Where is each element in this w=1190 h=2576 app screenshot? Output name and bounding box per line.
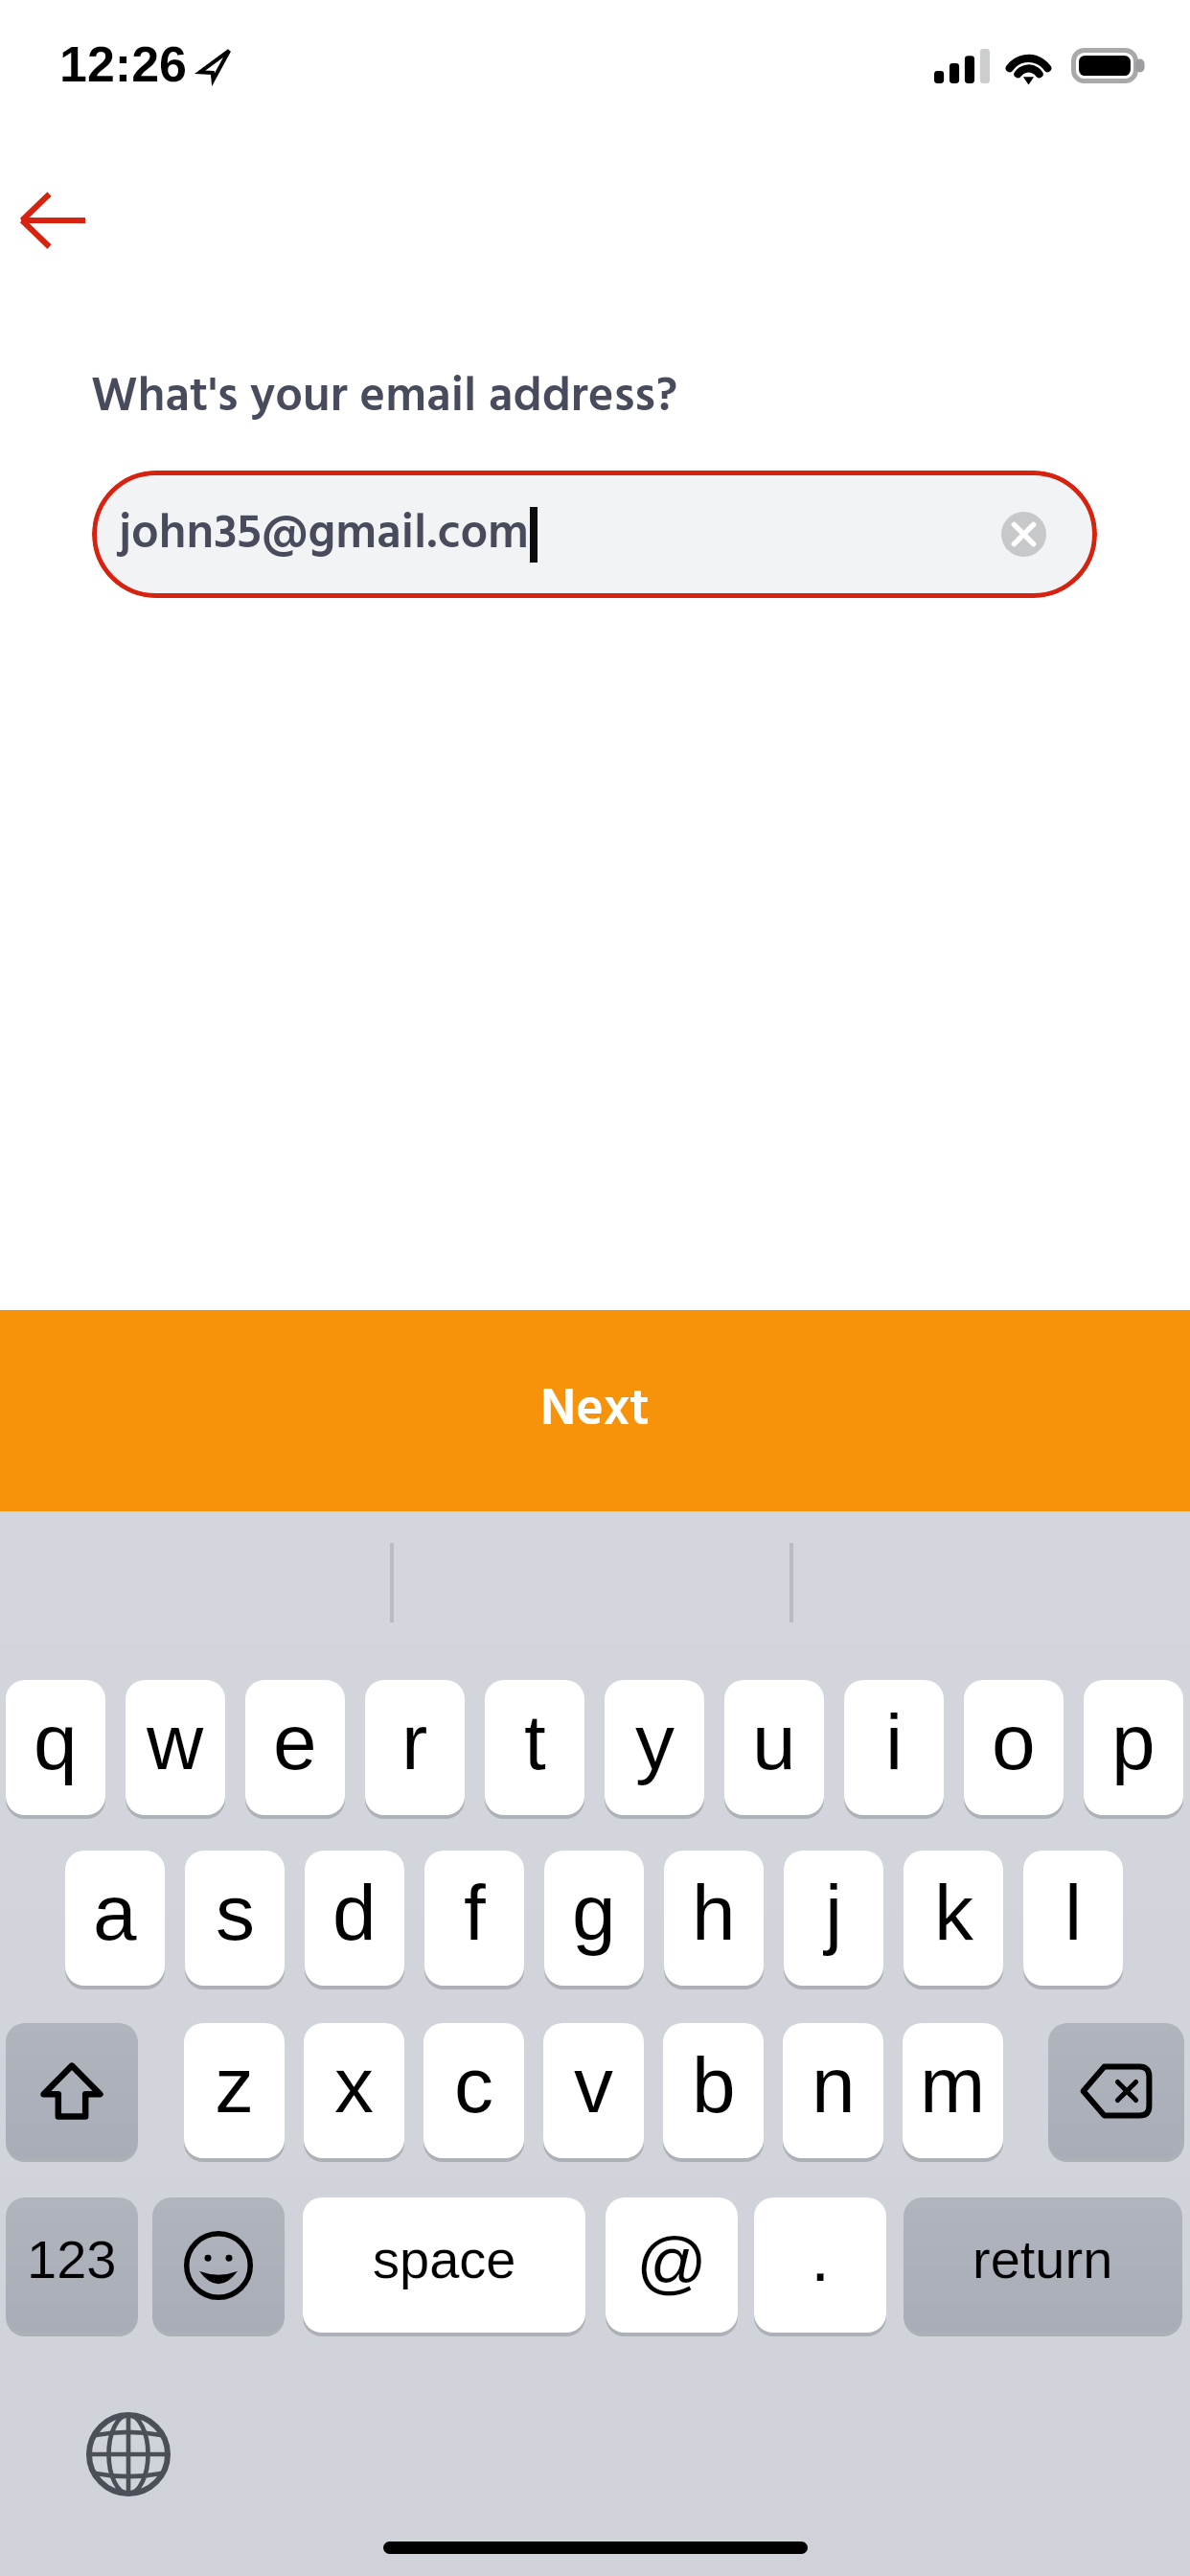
button[interactable]: p — [1084, 1680, 1183, 1815]
staticText: k — [934, 1869, 973, 1957]
button[interactable]: g — [544, 1851, 644, 1986]
button[interactable]: Shift — [6, 2023, 138, 2158]
staticText: space — [373, 2229, 516, 2289]
staticText: y — [635, 1698, 675, 1786]
button[interactable]: 123 — [6, 2197, 138, 2333]
staticText: 123 — [27, 2229, 117, 2289]
button[interactable]: e — [245, 1680, 345, 1815]
staticText: b — [692, 2041, 736, 2129]
button[interactable]: @ — [606, 2197, 738, 2333]
staticText: v — [574, 2041, 613, 2129]
staticText: john35@gmail.com — [119, 495, 529, 573]
button[interactable]: y — [605, 1680, 704, 1815]
staticText: Next — [540, 1369, 650, 1452]
staticText: t — [524, 1698, 546, 1786]
staticText: m — [920, 2041, 986, 2129]
button[interactable]: h — [664, 1851, 764, 1986]
staticText: j — [825, 1869, 843, 1957]
button[interactable]: Switch keyboard — [86, 2412, 171, 2496]
button[interactable]: n — [783, 2023, 883, 2158]
staticText: z — [215, 2041, 254, 2129]
button[interactable]: d — [305, 1851, 404, 1986]
staticText: a — [93, 1869, 137, 1957]
button[interactable]: v — [543, 2023, 644, 2158]
button[interactable]: q — [6, 1680, 105, 1815]
staticText: l — [1064, 1869, 1083, 1957]
button[interactable]: c — [423, 2023, 524, 2158]
other: Shift — [40, 2062, 103, 2120]
button[interactable]: r — [365, 1680, 465, 1815]
button[interactable]: f — [424, 1851, 524, 1986]
staticText: x — [334, 2041, 374, 2129]
staticText: u — [752, 1698, 796, 1786]
button[interactable]: Next — [0, 1310, 1190, 1511]
button[interactable]: Clear text — [1001, 512, 1046, 557]
button[interactable]: j — [784, 1851, 883, 1986]
other: Emoji — [184, 2231, 253, 2300]
staticText: . — [811, 2218, 831, 2296]
staticText: n — [812, 2041, 856, 2129]
staticText: c — [454, 2041, 493, 2129]
button[interactable]: . — [754, 2197, 886, 2333]
staticText: f — [464, 1869, 486, 1957]
staticText: @ — [636, 2222, 708, 2301]
staticText: q — [34, 1698, 78, 1786]
staticText: o — [992, 1698, 1036, 1786]
staticText: d — [332, 1869, 377, 1957]
staticText: w — [147, 1698, 204, 1786]
button[interactable]: return — [904, 2197, 1182, 2333]
button[interactable]: k — [904, 1851, 1003, 1986]
other: Backspace — [1080, 2063, 1153, 2119]
staticText: What's your email address? — [91, 358, 678, 436]
staticText: h — [692, 1869, 736, 1957]
button[interactable]: b — [663, 2023, 764, 2158]
staticText: g — [572, 1869, 616, 1957]
button[interactable]: t — [485, 1680, 584, 1815]
button[interactable]: john35@gmail.com — [92, 471, 1097, 598]
staticText: 12:26 — [59, 36, 187, 92]
button[interactable]: w — [126, 1680, 225, 1815]
button[interactable]: m — [903, 2023, 1003, 2158]
button[interactable]: o — [964, 1680, 1064, 1815]
button[interactable]: x — [304, 2023, 404, 2158]
staticText: e — [273, 1698, 317, 1786]
button[interactable]: z — [184, 2023, 285, 2158]
button[interactable]: a — [65, 1851, 165, 1986]
button[interactable]: l — [1023, 1851, 1123, 1986]
button[interactable]: Back — [0, 169, 115, 272]
button[interactable]: i — [844, 1680, 944, 1815]
button[interactable]: space — [303, 2197, 585, 2333]
staticText: r — [401, 1698, 428, 1786]
staticText: s — [216, 1869, 255, 1957]
button[interactable]: s — [185, 1851, 285, 1986]
button[interactable]: u — [724, 1680, 824, 1815]
staticText: i — [885, 1698, 904, 1786]
button[interactable]: Backspace — [1048, 2023, 1184, 2158]
button[interactable]: Emoji — [152, 2197, 285, 2333]
staticText: return — [973, 2229, 1113, 2289]
staticText: p — [1111, 1698, 1156, 1786]
